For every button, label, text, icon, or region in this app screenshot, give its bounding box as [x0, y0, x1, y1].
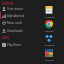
staticText: Dropbox: [44, 43, 55, 46]
button[interactable]: Notepad: [43, 6, 55, 18]
button[interactable]: Alphabetical: [0, 12, 28, 19]
staticText: Chrome: [44, 29, 54, 32]
staticText: Notepad: [44, 15, 55, 18]
staticText: Alphabetical: [7, 14, 25, 18]
staticText: Play Store: [7, 43, 21, 47]
button[interactable]: Play Store: [0, 41, 28, 48]
button[interactable]: Photos: [43, 49, 55, 61]
button[interactable]: Most used: [0, 19, 28, 26]
staticText: User action: [7, 7, 23, 11]
staticText: Most used: [7, 21, 22, 25]
staticText: Downloads: [7, 29, 23, 33]
button[interactable]: Dropbox: [43, 34, 55, 46]
button[interactable]: Chrome: [43, 20, 55, 32]
staticText: SORT BY: [2, 2, 14, 6]
staticText: APPS: [2, 36, 9, 40]
staticText: Photos: [45, 58, 54, 61]
button[interactable]: User action: [0, 5, 28, 12]
button[interactable]: Downloads: [0, 27, 28, 34]
